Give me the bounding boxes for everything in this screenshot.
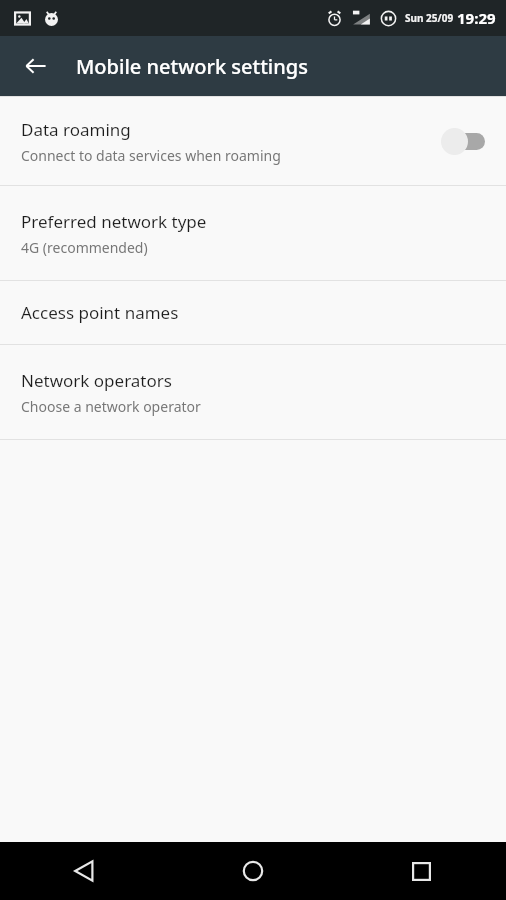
staticText: Access point names bbox=[21, 301, 179, 324]
button[interactable]: Back bbox=[0, 842, 168, 900]
staticText: Mobile network settings bbox=[76, 53, 308, 80]
staticText: Data roaming bbox=[21, 118, 131, 141]
staticText: 19:29 bbox=[457, 8, 496, 28]
staticText: Sun 25/09 bbox=[405, 11, 454, 25]
staticText: Choose a network operator bbox=[21, 397, 201, 416]
button[interactable]: Home bbox=[168, 842, 337, 900]
button[interactable]: Preferred network type bbox=[0, 186, 506, 280]
button[interactable]: Back bbox=[12, 42, 60, 90]
staticText: Preferred network type bbox=[21, 210, 207, 233]
button[interactable]: Data roaming bbox=[0, 97, 506, 185]
button[interactable]: Network operators bbox=[0, 345, 506, 439]
button[interactable]: Recent apps bbox=[337, 842, 506, 900]
staticText: 4G (recommended) bbox=[21, 238, 148, 257]
staticText: Network operators bbox=[21, 369, 172, 392]
button[interactable]: Data roaming toggle, off bbox=[441, 126, 485, 156]
staticText: Connect to data services when roaming bbox=[21, 146, 281, 165]
button[interactable]: Access point names bbox=[0, 281, 506, 344]
